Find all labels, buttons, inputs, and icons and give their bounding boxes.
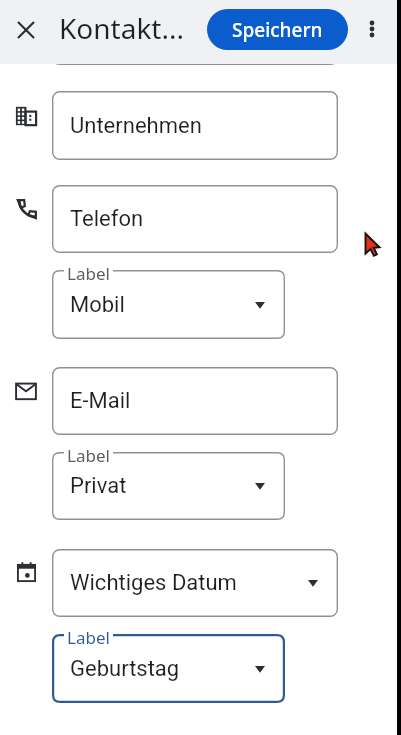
button[interactable]: Close: [9, 13, 43, 47]
button[interactable]: Phone: [14, 197, 39, 222]
button[interactable]: Speichern: [207, 9, 348, 50]
staticText: Unternehmen: [70, 113, 202, 139]
staticText: Kontakt...: [59, 9, 184, 47]
staticText: Telefon: [70, 206, 144, 232]
staticText: Wichtiges Datum: [70, 570, 237, 596]
button[interactable]: Wichtiges Datum: [52, 549, 338, 617]
button[interactable]: Label: [52, 270, 285, 339]
staticText: Label: [67, 626, 110, 649]
button[interactable]: Label: [52, 634, 285, 703]
button[interactable]: Date: [16, 561, 37, 582]
staticText: Label: [67, 262, 110, 285]
staticText: Label: [67, 444, 110, 467]
staticText: Speichern: [232, 17, 323, 43]
staticText: Mobil: [70, 292, 125, 318]
staticText: E-Mail: [70, 388, 131, 414]
button[interactable]: E-Mail: [52, 367, 338, 435]
button[interactable]: Unternehmen: [52, 91, 338, 160]
button[interactable]: Company: [15, 105, 37, 127]
button[interactable]: Telefon: [52, 185, 338, 253]
staticText: Privat: [70, 473, 127, 499]
button[interactable]: Label: [52, 452, 285, 520]
button[interactable]: More options: [355, 12, 388, 45]
staticText: Geburtstag: [70, 656, 180, 682]
button[interactable]: Email: [15, 379, 37, 401]
